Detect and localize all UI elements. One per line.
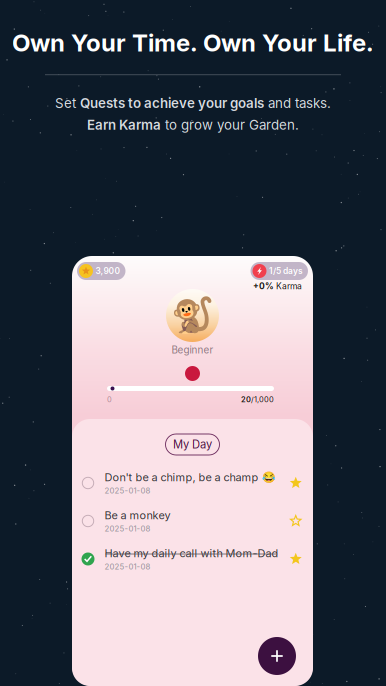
staticText: Set Quests to achieve your goals and tas…: [55, 95, 331, 111]
staticText: Don't be a chimp, be a champ 😂: [104, 471, 275, 484]
button[interactable]: My Day: [165, 434, 219, 455]
staticText: Have my daily call with Mom-Dad: [104, 547, 278, 560]
staticText: 🐒: [171, 295, 214, 336]
staticText: 2025-01-08: [104, 524, 150, 533]
button[interactable]: Be a monkey: [72, 502, 313, 540]
button[interactable]: Add quest: [258, 637, 296, 675]
button[interactable]: Don't be a chimp, be a champ 😂: [72, 464, 313, 502]
staticText: 2025-01-08: [104, 562, 150, 571]
staticText: +0% Karma: [253, 281, 302, 291]
staticText: Be a monkey: [104, 509, 170, 522]
staticText: 1/5 days: [269, 266, 303, 276]
button[interactable]: 3,900: [77, 262, 125, 280]
staticText: 20/1,000: [241, 395, 274, 404]
staticText: Earn Karma to grow your Garden.: [87, 117, 299, 133]
staticText: My Day: [173, 438, 212, 451]
staticText: Own Your Time. Own Your Life.: [12, 28, 374, 57]
staticText: Beginner: [171, 344, 213, 356]
staticText: 3,900: [95, 266, 120, 276]
staticText: 0: [107, 395, 112, 404]
button[interactable]: 1/5 days: [250, 262, 308, 280]
staticText: 2025-01-08: [104, 486, 150, 495]
button[interactable]: Have my daily call with Mom-Dad: [72, 540, 313, 578]
